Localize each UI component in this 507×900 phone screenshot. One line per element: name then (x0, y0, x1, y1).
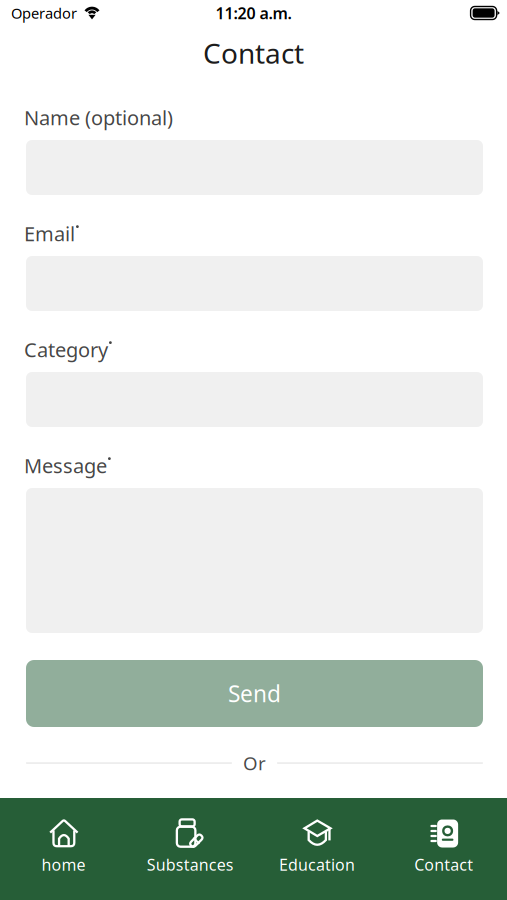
staticText: Email (24, 220, 75, 247)
button[interactable]: Education (253, 803, 380, 895)
staticText: Send (228, 678, 281, 708)
button[interactable]: Send (26, 660, 483, 727)
staticText: Category (24, 336, 108, 363)
staticText: Contact (203, 34, 304, 72)
button[interactable]: home (0, 803, 127, 895)
staticText: Education (279, 854, 355, 875)
staticText: Name (optional) (24, 104, 173, 131)
staticText: home (41, 854, 85, 875)
staticText: Or (243, 751, 266, 775)
staticText: 11:20 a.m. (215, 2, 291, 24)
button[interactable]: Substances (127, 803, 254, 895)
staticText: Substances (147, 854, 234, 875)
button[interactable]: Contact (380, 803, 507, 895)
staticText: Operador (11, 3, 77, 23)
staticText: Message (24, 452, 107, 479)
staticText: Contact (414, 854, 473, 875)
